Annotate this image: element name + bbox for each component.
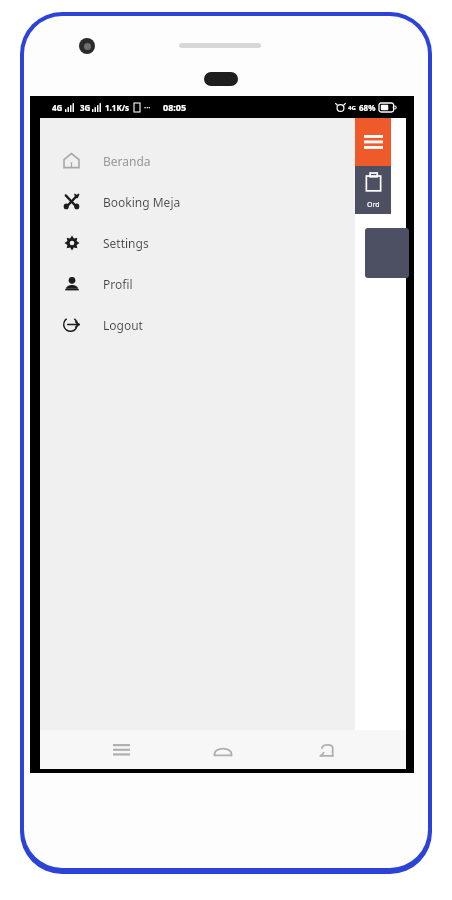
- staticText: Ord: [367, 200, 380, 210]
- staticText: Logout: [103, 317, 143, 333]
- staticText: Profil: [103, 276, 133, 292]
- staticText: 08:05: [163, 101, 187, 113]
- staticText: 3G: [80, 102, 91, 113]
- button[interactable]: [365, 228, 409, 278]
- button[interactable]: Recent apps: [99, 730, 143, 769]
- button[interactable]: Home: [201, 730, 245, 769]
- button[interactable]: Settings: [40, 222, 355, 263]
- button[interactable]: Logout: [40, 304, 355, 345]
- staticText: Booking Meja: [103, 194, 181, 210]
- button[interactable]: Profil: [40, 263, 355, 304]
- staticText: 68%: [359, 102, 376, 113]
- staticText: 4G: [348, 104, 356, 112]
- staticText: ···: [144, 102, 151, 113]
- button[interactable]: Beranda: [40, 140, 355, 181]
- staticText: 1.1K/s: [105, 102, 130, 113]
- staticText: 4G: [52, 102, 63, 113]
- button[interactable]: Open navigation menu: [355, 118, 391, 166]
- button[interactable]: Back: [304, 730, 348, 769]
- staticText: Beranda: [103, 153, 151, 169]
- button[interactable]: Booking Meja: [40, 181, 355, 222]
- button[interactable]: Orders: [355, 166, 391, 214]
- staticText: Settings: [103, 235, 149, 251]
